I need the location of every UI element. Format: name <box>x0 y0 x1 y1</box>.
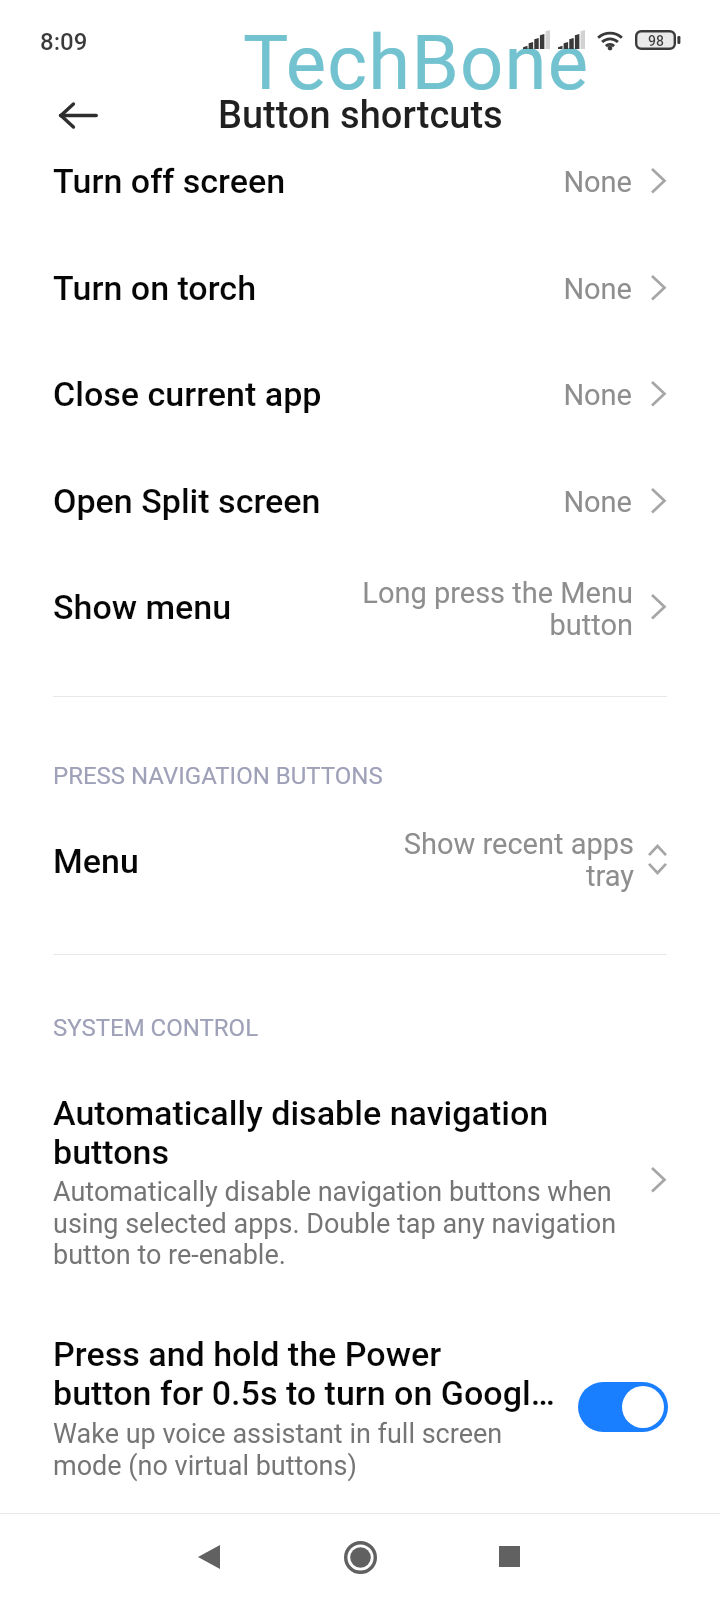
staticText: Open Split screen <box>53 481 321 521</box>
staticText: Press and hold the Power button for 0.5s… <box>53 1334 573 1413</box>
staticText: Wake up voice assistant in full screen m… <box>53 1418 558 1481</box>
button[interactable]: Turn off screen <box>0 128 720 235</box>
staticText: PRESS NAVIGATION BUTTONS <box>53 762 383 790</box>
staticText: Long press the Menu button <box>351 576 633 642</box>
staticText: Close current app <box>53 374 322 414</box>
button[interactable]: Press and hold the Power button for 0.5s… <box>0 1310 720 1500</box>
staticText: None <box>432 165 632 199</box>
staticText: None <box>432 485 632 519</box>
button[interactable]: Show menu <box>0 554 720 696</box>
staticText: Turn off screen <box>53 161 286 201</box>
staticText: Show menu <box>53 587 232 627</box>
staticText: None <box>432 272 632 306</box>
staticText: SYSTEM CONTROL <box>53 1014 259 1042</box>
staticText: TechBone <box>243 18 590 107</box>
button[interactable]: Close current app <box>0 341 720 448</box>
button[interactable]: Recent apps <box>469 1516 549 1596</box>
button[interactable]: Menu <box>0 800 720 920</box>
staticText: Menu <box>53 841 139 881</box>
button[interactable]: Back <box>169 1517 249 1597</box>
staticText: Automatically disable navigation buttons… <box>53 1176 643 1270</box>
button[interactable]: Turn on Google Assistant shortcut <box>578 1382 668 1432</box>
button[interactable]: Open Split screen <box>0 448 720 555</box>
staticText: None <box>432 378 632 412</box>
button[interactable]: Turn on torch <box>0 235 720 342</box>
staticText: Turn on torch <box>53 268 257 308</box>
staticText: 8:09 <box>40 28 88 56</box>
staticText: Button shortcuts <box>218 93 503 138</box>
button[interactable]: Automatically disable navigation buttons <box>0 1070 720 1292</box>
button[interactable]: Navigate up <box>49 90 107 140</box>
button[interactable]: Home <box>320 1517 400 1597</box>
staticText: Show recent apps tray <box>352 827 634 893</box>
staticText: Automatically disable navigation buttons <box>53 1093 563 1172</box>
staticText: 98 <box>648 33 664 49</box>
